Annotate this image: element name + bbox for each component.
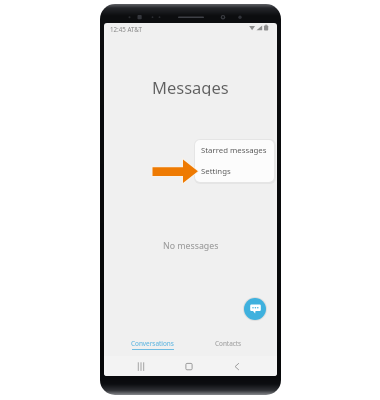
staticText: Conversations bbox=[131, 339, 174, 348]
button[interactable]: Start new conversation bbox=[244, 298, 266, 320]
button[interactable]: Conversations bbox=[125, 339, 180, 359]
staticText: No messages bbox=[163, 240, 219, 252]
staticText: 12:45 AT&T bbox=[110, 25, 142, 33]
button[interactable]: Contacts bbox=[201, 339, 256, 359]
button[interactable]: Home bbox=[165, 356, 213, 376]
staticText: Settings bbox=[201, 166, 231, 177]
staticText: Starred messages bbox=[201, 145, 267, 156]
staticText: Contacts bbox=[215, 339, 242, 348]
button[interactable]: Recent apps bbox=[117, 356, 165, 376]
staticText: Messages bbox=[152, 76, 229, 96]
button[interactable]: Settings bbox=[195, 161, 274, 182]
button[interactable]: Back bbox=[213, 356, 261, 376]
button[interactable]: Starred messages bbox=[195, 140, 274, 161]
